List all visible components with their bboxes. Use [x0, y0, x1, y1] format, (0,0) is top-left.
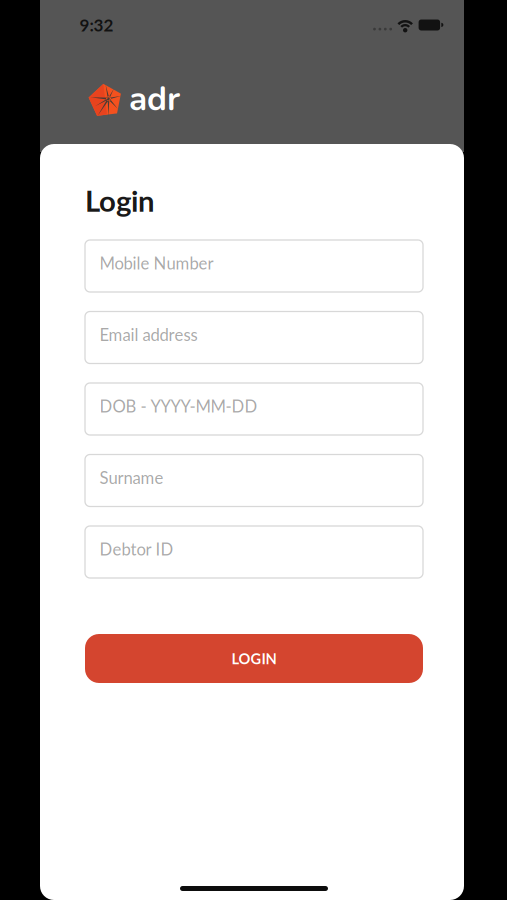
staticText: Mobile Number [99, 253, 213, 273]
staticText: Surname [99, 467, 163, 487]
staticText: DOB - YYYY-MM-DD [99, 396, 257, 416]
staticText: Email address [99, 324, 197, 344]
staticText: Debtor ID [99, 539, 173, 559]
button[interactable]: Mobile Number [85, 240, 423, 292]
button[interactable]: DOB - YYYY-MM-DD [85, 383, 423, 435]
button[interactable]: Debtor ID [85, 526, 423, 578]
staticText: 9:32 [79, 15, 113, 35]
staticText: Login [85, 183, 155, 218]
button[interactable]: Surname [85, 454, 423, 506]
staticText: LOGIN [231, 650, 276, 667]
button[interactable]: Email address [85, 311, 423, 363]
staticText: adr [129, 76, 180, 122]
button[interactable]: LOGIN [85, 634, 423, 683]
